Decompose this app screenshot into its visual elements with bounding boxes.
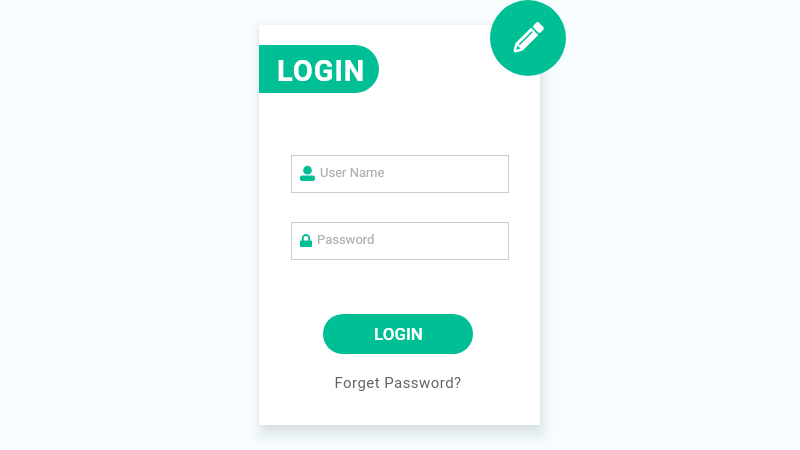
staticText: Forget Password?	[334, 374, 462, 392]
button[interactable]: Forget Password?	[323, 371, 473, 395]
button[interactable]: Edit	[490, 0, 566, 76]
staticText: Password	[317, 232, 375, 247]
staticText: LOGIN	[277, 54, 366, 88]
staticText: User Name	[320, 165, 385, 180]
button[interactable]: LOGIN	[323, 314, 473, 354]
button[interactable]: Password	[291, 222, 509, 260]
button[interactable]: User Name	[291, 155, 509, 193]
staticText: LOGIN	[374, 324, 423, 344]
